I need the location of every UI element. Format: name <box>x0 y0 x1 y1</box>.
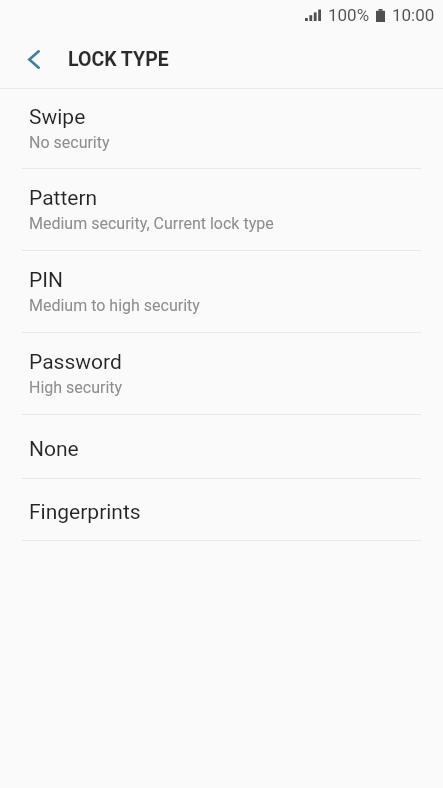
staticText: Fingerprints <box>29 500 141 525</box>
staticText: Swipe <box>29 105 86 130</box>
staticText: 10:00 <box>392 5 435 25</box>
button[interactable]: Fingerprints <box>0 479 443 540</box>
button[interactable]: Password <box>0 333 443 414</box>
staticText: Medium to high security <box>29 296 200 315</box>
staticText: PIN <box>29 268 63 293</box>
button[interactable]: Pattern <box>0 169 443 250</box>
button[interactable] <box>0 30 68 88</box>
button[interactable]: Swipe <box>0 89 443 168</box>
staticText: Password <box>29 350 122 375</box>
staticText: No security <box>29 133 110 152</box>
staticText: Medium security, Current lock type <box>29 214 274 233</box>
button[interactable]: PIN <box>0 251 443 332</box>
staticText: LOCK TYPE <box>68 48 169 71</box>
staticText: None <box>29 437 79 462</box>
button[interactable]: None <box>0 415 443 478</box>
staticText: High security <box>29 378 123 397</box>
staticText: Pattern <box>29 186 98 211</box>
staticText: 100% <box>328 5 370 25</box>
